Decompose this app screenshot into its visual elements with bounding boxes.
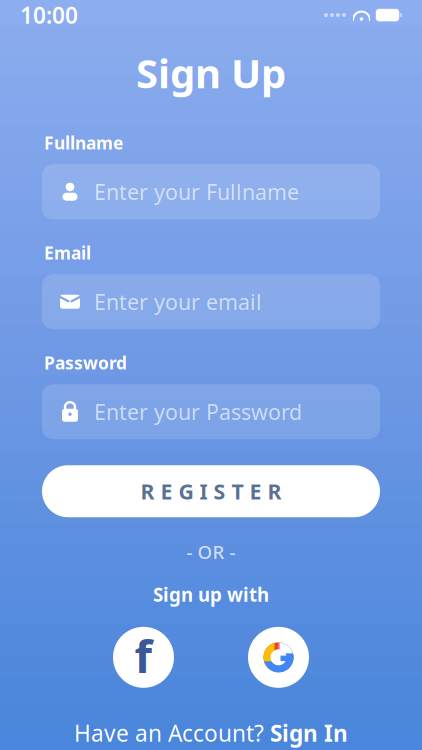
staticText: Fullname bbox=[44, 131, 123, 154]
button[interactable]: Enter your Password bbox=[42, 384, 380, 439]
button[interactable]: Have an Account? bbox=[54, 710, 368, 750]
staticText: R E G I S T E R bbox=[140, 477, 281, 505]
staticText: Have an Account? bbox=[74, 718, 264, 748]
staticText: - OR - bbox=[186, 539, 235, 564]
staticText: Sign Up bbox=[136, 46, 286, 99]
button[interactable]: R E G I S T E R bbox=[42, 465, 380, 517]
staticText: Enter your email bbox=[94, 288, 262, 316]
staticText: Email bbox=[44, 241, 91, 264]
button[interactable]: Enter your email bbox=[42, 274, 380, 329]
staticText: Enter your Password bbox=[94, 398, 302, 426]
button[interactable]: Sign up with Facebook bbox=[113, 627, 174, 688]
staticText: Password bbox=[44, 351, 127, 374]
staticText: Sign In bbox=[270, 718, 348, 748]
button[interactable]: Sign up with Google bbox=[248, 627, 309, 688]
button[interactable]: Enter your Fullname bbox=[42, 164, 380, 219]
staticText: Sign up with bbox=[153, 582, 269, 607]
staticText: 10:00 bbox=[20, 0, 78, 30]
staticText: f bbox=[134, 625, 152, 685]
staticText: Enter your Fullname bbox=[94, 177, 299, 206]
